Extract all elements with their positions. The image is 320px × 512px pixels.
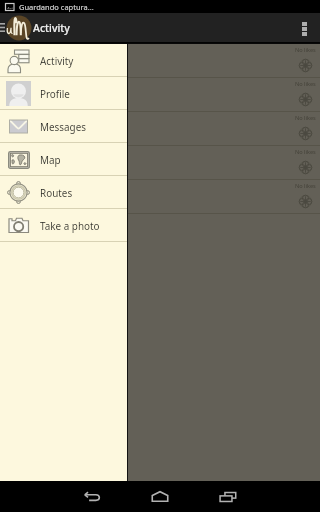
button[interactable]: More options bbox=[289, 13, 320, 42]
button[interactable]: No likes bbox=[0, 180, 320, 214]
button[interactable]: Take a photo bbox=[0, 209, 128, 242]
staticText: No likes bbox=[295, 114, 316, 122]
button[interactable]: Activity bbox=[0, 44, 128, 77]
button[interactable]: Home bbox=[126, 481, 194, 512]
staticText: Messages bbox=[40, 120, 86, 133]
button[interactable]: Routes bbox=[0, 176, 128, 209]
staticText: Guardando captura... bbox=[19, 2, 94, 12]
staticText: Map bbox=[40, 153, 61, 166]
button[interactable]: Recent apps bbox=[194, 481, 262, 512]
button[interactable]: No likes bbox=[0, 146, 320, 180]
button[interactable]: Map bbox=[0, 143, 128, 176]
button[interactable]: No likes bbox=[0, 78, 320, 112]
button[interactable]: Profile bbox=[0, 77, 128, 110]
staticText: No likes bbox=[295, 46, 316, 54]
staticText: No likes bbox=[295, 148, 316, 156]
button[interactable]: Messages bbox=[0, 110, 128, 143]
button[interactable]: No likes bbox=[0, 112, 320, 146]
staticText: Take a photo bbox=[40, 219, 100, 232]
staticText: Activity bbox=[33, 21, 70, 35]
staticText: Routes bbox=[40, 186, 73, 199]
staticText: No likes bbox=[295, 80, 316, 88]
button[interactable]: Back bbox=[58, 481, 126, 512]
button[interactable]: Open navigation drawer bbox=[0, 13, 6, 42]
staticText: No likes bbox=[295, 182, 316, 190]
staticText: Activity bbox=[40, 54, 74, 67]
button[interactable]: No likes bbox=[0, 44, 320, 78]
staticText: Profile bbox=[40, 87, 70, 100]
